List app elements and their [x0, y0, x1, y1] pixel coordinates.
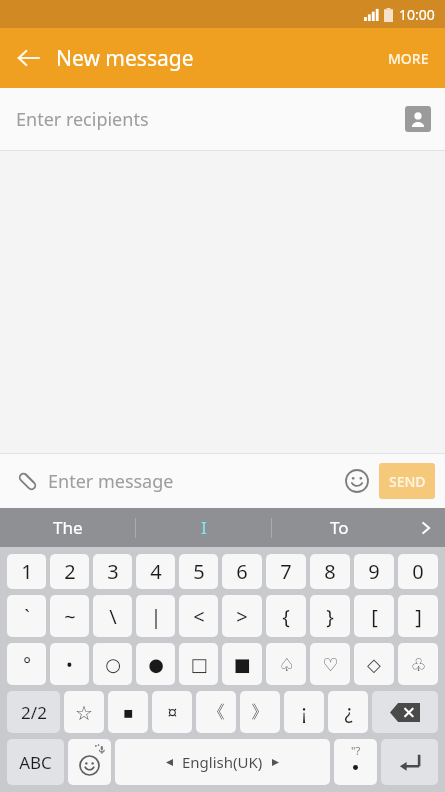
button[interactable]: Emoji and voice input [68, 739, 111, 785]
button[interactable]: Add contact [405, 106, 431, 132]
staticText: \ [109, 603, 117, 630]
button[interactable]: ° [7, 643, 46, 685]
staticText: 10:00 [399, 5, 435, 24]
button[interactable]: ~ [50, 595, 89, 637]
button[interactable]: ☆ [64, 691, 104, 733]
staticText: English(UK) [182, 752, 263, 772]
staticText: ° [23, 652, 31, 677]
staticText: 2 [64, 558, 76, 585]
button[interactable]: ● [136, 643, 175, 685]
button[interactable]: Enter [381, 739, 438, 785]
staticText: ○ [105, 654, 121, 675]
button[interactable]: Enter recipients [16, 107, 405, 132]
button[interactable]: ♡ [310, 643, 350, 685]
button[interactable]: 7 [266, 554, 306, 589]
button[interactable]: 6 [222, 554, 262, 589]
staticText: ~ [64, 603, 76, 630]
staticText: ] [415, 603, 422, 630]
staticText: ¤ [167, 700, 178, 725]
button[interactable]: Enter message [48, 469, 339, 494]
button[interactable]: 2/2 [7, 691, 60, 733]
staticText: Enter message [48, 469, 174, 494]
staticText: □ [190, 654, 208, 675]
button[interactable]: ` [7, 595, 46, 637]
button[interactable]: ¤ [152, 691, 192, 733]
button[interactable]: Back [0, 30, 56, 86]
button[interactable]: MORE [372, 33, 445, 84]
button[interactable]: I [136, 508, 271, 547]
staticText: 》 [251, 701, 269, 724]
staticText: "? [351, 743, 361, 758]
button[interactable]: > [222, 595, 262, 637]
button[interactable]: ♧ [398, 643, 438, 685]
staticText: ● [148, 654, 164, 675]
button[interactable]: ♤ [266, 643, 306, 685]
button[interactable]: ○ [93, 643, 132, 685]
button[interactable]: 5 [179, 554, 218, 589]
button[interactable]: 8 [310, 554, 350, 589]
button[interactable]: 3 [93, 554, 132, 589]
button[interactable]: { [266, 595, 306, 637]
button[interactable]: Period [334, 739, 377, 785]
staticText: I [201, 516, 207, 539]
staticText: 《 [207, 701, 225, 724]
staticText: ▪ [123, 703, 134, 722]
staticText: 4 [150, 558, 162, 585]
button[interactable]: The [0, 508, 135, 547]
button[interactable]: □ [179, 643, 218, 685]
staticText: ` [24, 603, 30, 630]
staticText: 5 [193, 558, 205, 585]
staticText: 2/2 [21, 701, 47, 724]
staticText: 3 [107, 558, 119, 585]
staticText: 6 [236, 558, 248, 585]
staticText: { [282, 603, 290, 630]
staticText: | [150, 603, 162, 630]
button[interactable]: } [310, 595, 350, 637]
button[interactable]: ABC [7, 739, 64, 785]
button[interactable]: • [50, 643, 89, 685]
staticText: ■ [233, 654, 251, 675]
staticText: 7 [280, 558, 292, 585]
button[interactable]: < [179, 595, 218, 637]
staticText: SEND [389, 472, 426, 491]
staticText: The [53, 516, 83, 539]
button[interactable]: [ [354, 595, 394, 637]
button[interactable]: ▪ [108, 691, 148, 733]
button[interactable]: More suggestions [407, 508, 445, 547]
button[interactable]: Space [115, 739, 330, 785]
staticText: ◇ [367, 654, 381, 675]
button[interactable]: 《 [196, 691, 236, 733]
button[interactable]: ¿ [328, 691, 368, 733]
button[interactable]: 0 [398, 554, 438, 589]
button[interactable]: 》 [240, 691, 280, 733]
staticText: To [330, 516, 349, 539]
button[interactable]: SEND [379, 463, 435, 499]
button[interactable]: Emoji [339, 463, 375, 499]
staticText: ♧ [410, 654, 427, 675]
staticText: 9 [368, 558, 380, 585]
button[interactable]: 9 [354, 554, 394, 589]
button[interactable]: 1 [7, 554, 46, 589]
staticText: ABC [19, 751, 52, 774]
staticText: < [193, 603, 205, 630]
staticText: New message [56, 44, 194, 73]
button[interactable]: ◇ [354, 643, 394, 685]
button[interactable]: Attach [12, 466, 42, 496]
staticText: 8 [324, 558, 336, 585]
button[interactable]: Backspace [372, 691, 438, 733]
staticText: ♡ [322, 654, 339, 675]
button[interactable]: \ [93, 595, 132, 637]
staticText: ☆ [75, 701, 93, 724]
button[interactable]: 2 [50, 554, 89, 589]
button[interactable]: 4 [136, 554, 175, 589]
staticText: > [236, 603, 248, 630]
button[interactable]: ¡ [284, 691, 324, 733]
staticText: ¡ [301, 699, 307, 725]
staticText: ¿ [344, 699, 353, 725]
button[interactable]: | [136, 595, 175, 637]
button[interactable]: To [272, 508, 407, 547]
button[interactable]: ■ [222, 643, 262, 685]
staticText: [ [371, 603, 378, 630]
staticText: ♤ [278, 654, 295, 675]
button[interactable]: ] [398, 595, 438, 637]
